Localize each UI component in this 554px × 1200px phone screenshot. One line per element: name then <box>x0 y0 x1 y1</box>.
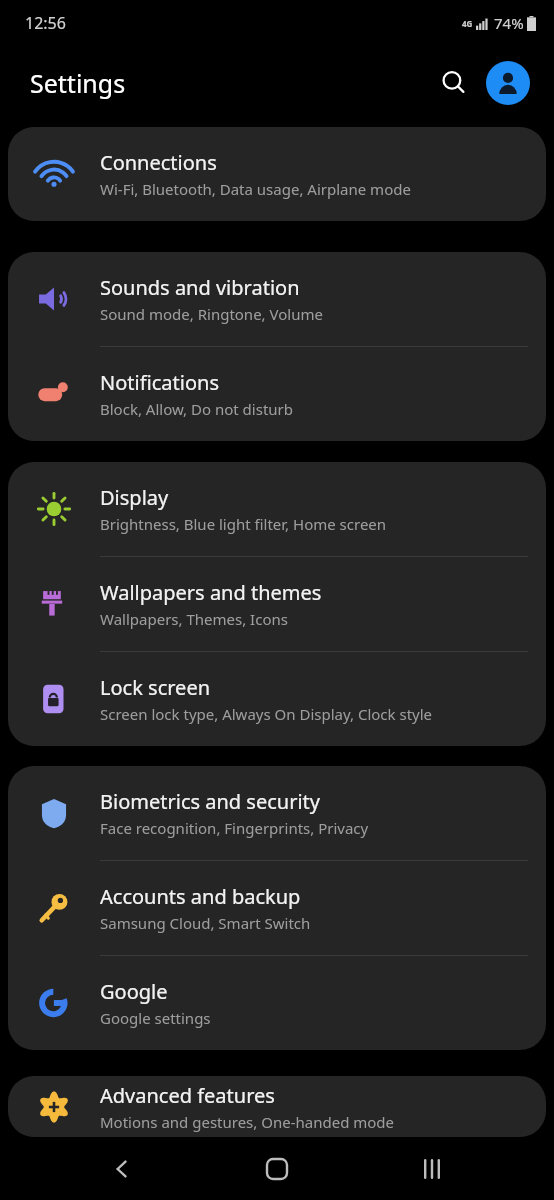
staticText: 4G <box>462 18 473 29</box>
staticText: Wallpapers and themes <box>100 579 322 606</box>
button[interactable]: Lock screen <box>8 652 546 746</box>
staticText: 74% <box>494 13 524 33</box>
staticText: Wallpapers, Themes, Icons <box>100 609 288 629</box>
staticText: Biometrics and security <box>100 788 320 815</box>
button[interactable]: Back <box>89 1137 155 1200</box>
staticText: Display <box>100 484 169 511</box>
staticText: Google <box>100 978 168 1005</box>
button[interactable]: Biometrics and security <box>8 766 546 860</box>
staticText: 12:56 <box>25 12 66 34</box>
staticText: Face recognition, Fingerprints, Privacy <box>100 818 369 838</box>
button[interactable]: Sounds and vibration <box>8 252 546 346</box>
staticText: Block, Allow, Do not disturb <box>100 399 294 419</box>
staticText: Notifications <box>100 369 219 396</box>
button[interactable]: Advanced features <box>8 1076 546 1137</box>
staticText: Accounts and backup <box>100 883 301 910</box>
staticText: Advanced features <box>100 1082 275 1109</box>
button[interactable]: Connections <box>8 127 546 221</box>
staticText: Brightness, Blue light filter, Home scre… <box>100 514 387 534</box>
staticText: Lock screen <box>100 674 211 701</box>
button[interactable]: Display <box>8 462 546 556</box>
button[interactable]: Home <box>244 1137 310 1200</box>
button[interactable]: Google <box>8 956 546 1050</box>
button[interactable]: Notifications <box>8 347 546 441</box>
staticText: Screen lock type, Always On Display, Clo… <box>100 704 433 724</box>
staticText: Motions and gestures, One-handed mode <box>100 1112 395 1132</box>
staticText: Google settings <box>100 1008 211 1028</box>
staticText: Wi-Fi, Bluetooth, Data usage, Airplane m… <box>100 179 411 199</box>
button[interactable]: Search <box>430 59 478 107</box>
staticText: Sounds and vibration <box>100 274 300 301</box>
button[interactable]: Account <box>486 61 530 105</box>
button[interactable]: Accounts and backup <box>8 861 546 955</box>
staticText: Settings <box>30 66 126 100</box>
staticText: Connections <box>100 149 217 176</box>
button[interactable]: Recents <box>399 1137 465 1200</box>
button[interactable]: Wallpapers and themes <box>8 557 546 651</box>
staticText: Sound mode, Ringtone, Volume <box>100 304 323 324</box>
staticText: Samsung Cloud, Smart Switch <box>100 913 311 933</box>
